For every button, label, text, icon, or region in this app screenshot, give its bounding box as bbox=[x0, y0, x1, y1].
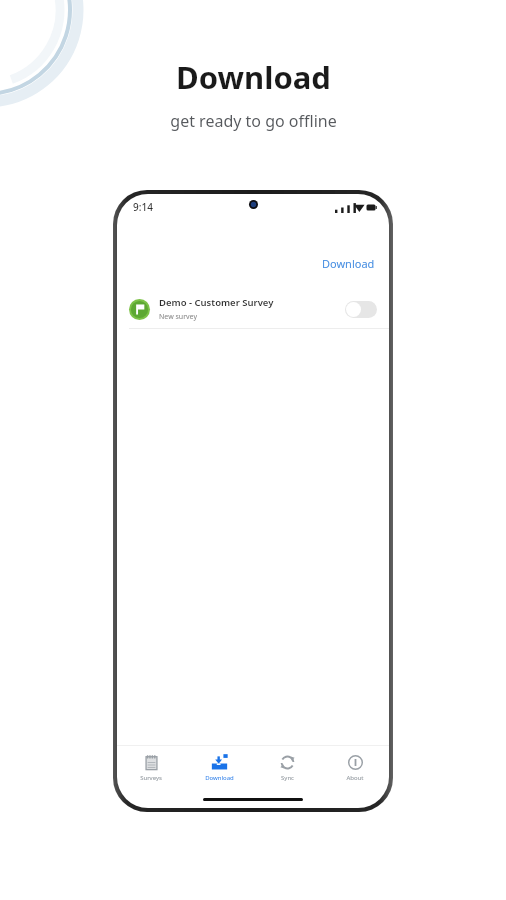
button[interactable]: About bbox=[321, 746, 389, 790]
button[interactable]: Download survey toggle bbox=[345, 301, 377, 318]
button[interactable]: Download bbox=[185, 746, 253, 790]
staticText: get ready to go offline bbox=[170, 110, 337, 132]
button[interactable]: Demo - Customer Survey bbox=[117, 293, 389, 328]
button[interactable]: Surveys bbox=[117, 746, 185, 790]
staticText: Sync bbox=[281, 774, 294, 782]
staticText: Surveys bbox=[140, 774, 162, 782]
staticText: Download bbox=[176, 56, 331, 98]
staticText: Download bbox=[205, 774, 234, 782]
button[interactable]: Download bbox=[117, 252, 389, 275]
staticText: Download bbox=[322, 256, 375, 271]
staticText: 9:14 bbox=[133, 200, 153, 214]
button[interactable]: Sync bbox=[253, 746, 321, 790]
staticText: New survey bbox=[159, 312, 197, 322]
staticText: Demo - Customer Survey bbox=[159, 296, 274, 309]
staticText: About bbox=[346, 774, 364, 782]
